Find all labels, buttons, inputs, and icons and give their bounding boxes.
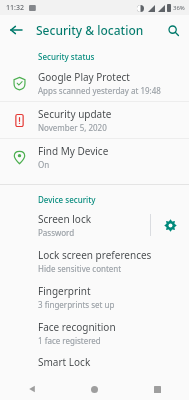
button[interactable]: Recent apps: [126, 378, 189, 400]
staticText: Fingerprint: [38, 284, 91, 298]
staticText: Smart Lock: [38, 355, 91, 369]
staticText: On: [38, 159, 50, 170]
staticText: 11:32: [6, 3, 24, 13]
button[interactable]: Face recognition: [0, 315, 189, 351]
staticText: Hide sensitive content: [38, 263, 122, 274]
staticText: November 5, 2020: [38, 122, 107, 133]
button[interactable]: Back: [0, 378, 63, 400]
button[interactable]: Lock screen preferences: [0, 243, 189, 279]
staticText: Screen lock: [38, 212, 92, 226]
staticText: Device security: [38, 194, 96, 205]
staticText: Security update: [38, 107, 112, 121]
staticText: Apps scanned yesterday at 19:48: [38, 85, 161, 96]
staticText: 3 fingerprints set up: [38, 299, 115, 310]
staticText: Security & location: [36, 22, 144, 38]
staticText: 36%: [173, 4, 185, 12]
staticText: Google Play Protect: [38, 70, 130, 84]
staticText: Find My Device: [38, 144, 109, 158]
button[interactable]: Screen lock: [0, 207, 150, 243]
staticText: Lock screen preferences: [38, 248, 152, 262]
button[interactable]: Screen lock settings: [151, 207, 189, 243]
button[interactable]: Fingerprint: [0, 279, 189, 315]
staticText: Password: [38, 227, 75, 238]
button[interactable]: Find My Device: [0, 139, 189, 175]
button[interactable]: Back: [5, 19, 27, 41]
button[interactable]: Search: [162, 19, 184, 41]
button[interactable]: Google Play Protect: [0, 65, 189, 101]
button[interactable]: Smart Lock: [0, 351, 189, 373]
staticText: Face recognition: [38, 320, 116, 334]
button[interactable]: Security update: [0, 102, 189, 138]
staticText: 1 face registered: [38, 335, 101, 346]
staticText: Security status: [38, 51, 95, 62]
button[interactable]: Home: [63, 378, 126, 400]
